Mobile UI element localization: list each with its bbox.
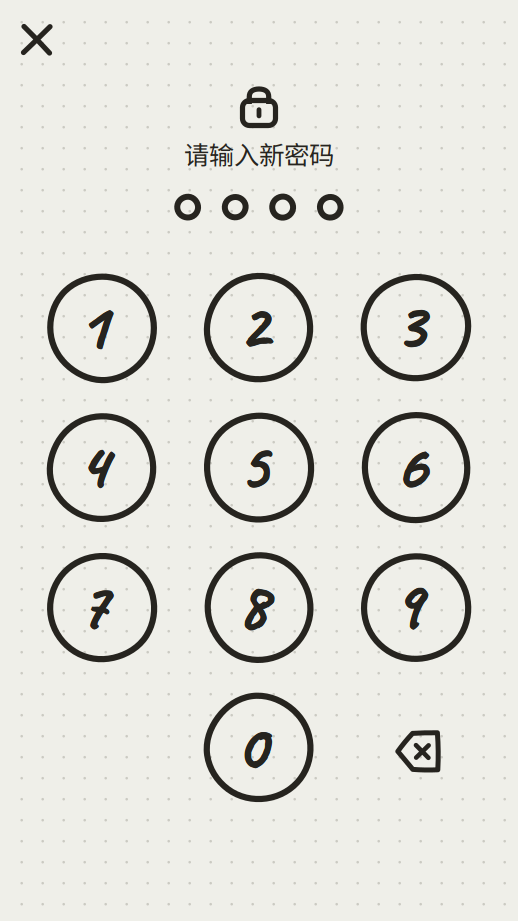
button[interactable]: 7 [44,550,160,666]
staticText: 6 [395,425,426,507]
staticText: 3 [395,284,424,367]
staticText: 请输入新密码 [184,135,334,172]
button[interactable]: Close [9,12,65,68]
staticText: 3 [395,284,424,366]
staticText: 8 [238,564,267,646]
staticText: 0 [237,705,266,787]
button[interactable]: 3 [358,270,474,386]
button[interactable]: 1 [44,270,160,386]
staticText: 7 [79,564,108,647]
button[interactable]: 5 [201,410,317,526]
staticText: 9 [393,564,422,646]
staticText: 5 [239,424,267,507]
staticText: 4 [78,424,107,507]
staticText: 6 [395,425,426,508]
staticText: 7 [78,564,107,646]
staticText: 4 [78,424,107,506]
staticText: 1 [77,285,106,367]
staticText: 3 [395,284,424,366]
staticText: 6 [395,425,426,507]
staticText: 1 [78,285,107,367]
button[interactable]: 0 [201,690,317,806]
button[interactable]: 6 [358,410,474,526]
staticText: 4 [79,424,108,506]
staticText: 1 [78,285,107,368]
staticText: 3 [395,284,424,366]
staticText: 9 [393,563,422,645]
staticText: 6 [395,425,426,507]
staticText: 9 [393,563,422,646]
button[interactable]: 9 [358,550,474,666]
staticText: 5 [239,424,267,506]
staticText: 4 [78,424,107,506]
staticText: 7 [78,564,107,647]
staticText: 2 [239,284,268,367]
staticText: 5 [239,425,267,507]
staticText: 8 [238,564,267,646]
staticText: 0 [236,705,265,787]
staticText: 9 [393,563,422,646]
staticText: 8 [238,564,267,647]
staticText: 2 [239,284,268,367]
staticText: 0 [236,705,265,788]
staticText: 1 [78,285,107,367]
staticText: 7 [78,565,107,647]
staticText: 2 [239,284,268,366]
staticText: 0 [236,705,265,787]
button[interactable]: 2 [201,270,317,386]
button[interactable]: Delete [358,690,474,806]
button[interactable]: 8 [201,550,317,666]
staticText: 5 [239,424,267,507]
button[interactable]: 4 [44,410,160,526]
staticText: 8 [238,564,267,646]
staticText: 2 [239,285,268,367]
